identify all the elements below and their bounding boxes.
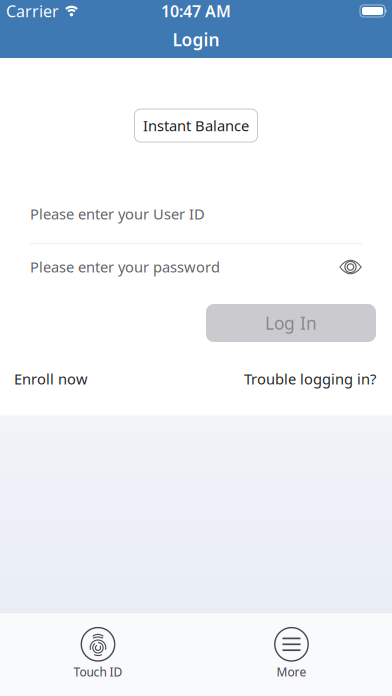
staticText: Please enter your User ID <box>30 204 205 223</box>
staticText: Log In <box>265 311 317 334</box>
staticText: Touch ID <box>73 664 122 680</box>
button[interactable]: Instant Balance <box>134 109 257 142</box>
staticText: More <box>276 664 306 680</box>
button[interactable]: Please enter your password <box>0 244 392 304</box>
staticText: Enroll now <box>14 369 88 388</box>
button[interactable]: Please enter your User ID <box>0 178 392 243</box>
staticText: Carrier <box>6 0 59 22</box>
staticText: Trouble logging in? <box>244 369 376 388</box>
staticText: Instant Balance <box>143 116 249 135</box>
staticText: Please enter your password <box>30 257 220 276</box>
staticText: 10:47 AM <box>161 0 231 22</box>
button[interactable]: Touch ID <box>0 627 196 680</box>
button[interactable]: More <box>196 627 392 680</box>
staticText: Login <box>172 28 219 51</box>
button[interactable]: Log In <box>206 304 376 342</box>
button[interactable]: Enroll now <box>14 369 88 388</box>
button[interactable]: Show password <box>339 259 362 275</box>
button[interactable]: Trouble logging in? <box>244 369 376 388</box>
